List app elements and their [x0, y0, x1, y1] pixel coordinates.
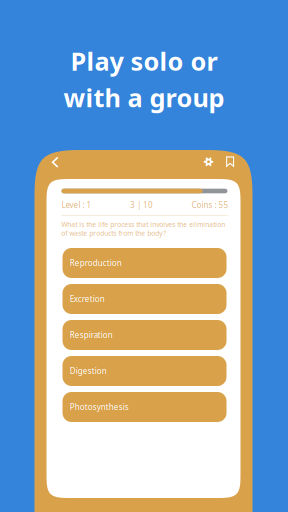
staticText: Digestion — [70, 366, 107, 376]
staticText: with a group — [63, 81, 224, 114]
button[interactable]: Excretion — [62, 284, 226, 314]
staticText: Play solo or — [70, 44, 217, 78]
staticText: 3 | 10 — [130, 200, 153, 210]
button[interactable]: Photosynthesis — [62, 392, 226, 422]
button[interactable]: Reproduction — [62, 248, 226, 278]
button[interactable]: Bookmark — [220, 151, 240, 171]
staticText: Reproduction — [70, 258, 122, 268]
staticText: Excretion — [70, 294, 105, 304]
button[interactable]: Back — [45, 152, 65, 172]
staticText: Respiration — [70, 330, 113, 340]
staticText: Coins : 55 — [191, 200, 228, 210]
button[interactable]: Settings — [198, 152, 218, 172]
staticText: What is the life process that involves t… — [61, 220, 225, 238]
staticText: Photosynthesis — [70, 402, 129, 412]
staticText: Level : 1 — [61, 200, 91, 210]
button[interactable]: Digestion — [62, 356, 226, 386]
button[interactable]: Respiration — [62, 320, 226, 350]
